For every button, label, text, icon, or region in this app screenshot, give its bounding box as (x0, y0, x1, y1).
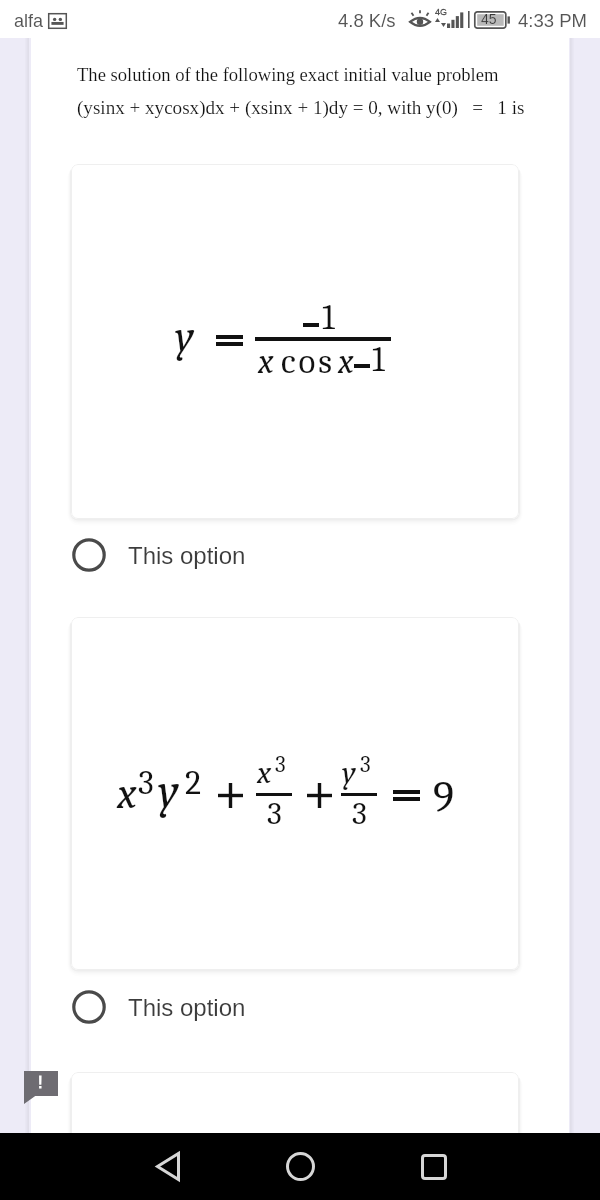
button[interactable]: Home (235, 1133, 365, 1200)
button[interactable] (71, 1072, 519, 1192)
staticText: 4:33 PM (518, 10, 587, 31)
staticText: x (338, 341, 354, 381)
button[interactable]: x (71, 617, 519, 970)
staticText: 3 (275, 751, 286, 777)
staticText: 4G (435, 7, 448, 17)
staticText: y (342, 754, 356, 791)
staticText: x (257, 754, 272, 791)
button[interactable]: Recent apps (368, 1133, 499, 1200)
staticText: 1 (322, 297, 335, 337)
staticText: This option (128, 542, 246, 569)
button[interactable]: This option (71, 532, 341, 578)
staticText: ! (38, 1074, 43, 1092)
staticText: 3 (267, 795, 282, 832)
staticText: x (258, 341, 274, 381)
staticText: 3 (360, 751, 371, 777)
staticText: 3 (352, 795, 367, 832)
button[interactable]: y (71, 164, 519, 519)
staticText: 4.8 K/s (338, 10, 396, 31)
staticText: y (175, 311, 194, 362)
staticText: y (158, 764, 179, 819)
staticText: (ysinx + xycosx)dx + (xsinx + 1)dy = 0, … (77, 97, 525, 118)
staticText: 45 (481, 11, 497, 27)
staticText: 2 (185, 763, 202, 802)
staticText: 3 (138, 763, 154, 802)
staticText: cos (281, 341, 335, 381)
staticText: alfa (14, 11, 44, 31)
staticText: x (117, 768, 137, 819)
button[interactable]: Back (101, 1133, 235, 1200)
button[interactable]: This option (71, 984, 341, 1030)
staticText: The solution of the following exact init… (77, 64, 499, 85)
staticText: This option (128, 994, 246, 1021)
staticText: 1 (372, 339, 385, 379)
staticText: 9 (433, 772, 455, 823)
